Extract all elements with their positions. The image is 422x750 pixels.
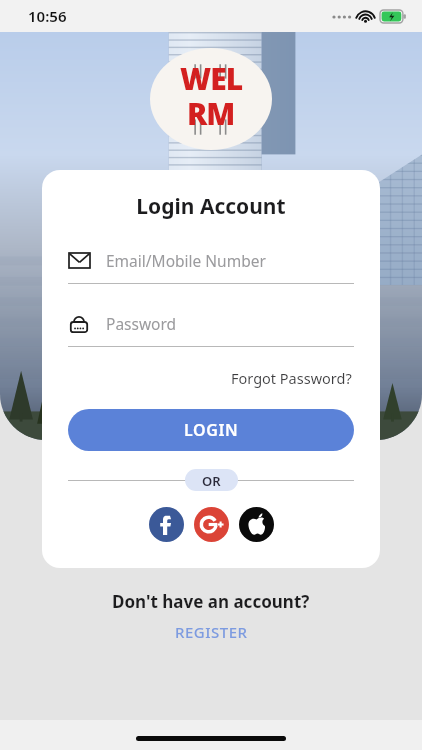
staticText: LOGIN: [184, 419, 239, 441]
staticText: Email/Mobile Number: [106, 250, 266, 271]
staticText: 10:56: [28, 6, 67, 26]
staticText: Forgot Password?: [231, 368, 352, 388]
staticText: REGISTER: [175, 622, 248, 642]
button[interactable]: Sign in with Apple: [239, 507, 274, 542]
staticText: OR: [202, 472, 221, 488]
button[interactable]: Sign in with Google: [194, 507, 229, 542]
staticText: RM: [187, 93, 235, 134]
button[interactable]: Email/Mobile Number: [68, 249, 354, 284]
staticText: Don't have an account?: [112, 590, 310, 613]
button[interactable]: REGISTER: [169, 620, 254, 644]
button[interactable]: Forgot Password?: [229, 365, 354, 391]
staticText: Login Account: [68, 192, 354, 221]
button[interactable]: Password: [68, 312, 354, 347]
staticText: WEL: [180, 58, 243, 99]
staticText: Password: [106, 313, 177, 334]
button[interactable]: Sign in with Facebook: [149, 507, 184, 542]
button[interactable]: LOGIN: [68, 409, 354, 451]
